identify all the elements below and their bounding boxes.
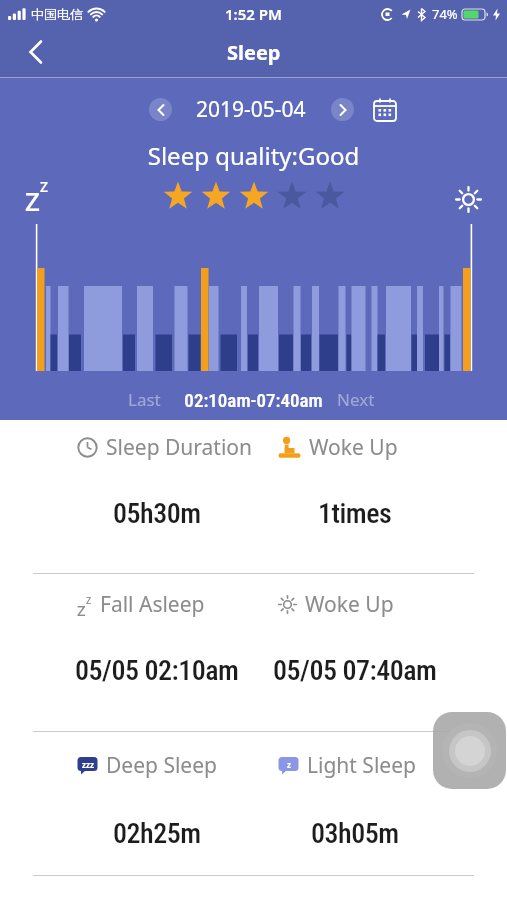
staticText: 03h05m <box>311 817 399 850</box>
staticText: 1times <box>318 497 392 530</box>
staticText: 02:10am-07:40am <box>0 389 507 411</box>
button[interactable] <box>149 98 172 121</box>
staticText: Z <box>25 183 40 218</box>
staticText: Fall Asleep <box>100 590 205 619</box>
staticText: 02h25m <box>113 817 201 850</box>
staticText: Sleep Duration <box>106 433 253 462</box>
staticText: Sleep quality:Good <box>0 139 507 172</box>
staticText: 中国电信 <box>31 6 83 22</box>
staticText: zzz <box>82 759 94 770</box>
staticText: Woke Up <box>305 590 394 619</box>
staticText: Woke Up <box>309 433 398 462</box>
staticText: 05/05 07:40am <box>273 654 437 687</box>
staticText: Deep Sleep <box>106 751 217 780</box>
staticText: Light Sleep <box>307 751 416 780</box>
staticText: Last <box>128 388 161 411</box>
staticText: 05/05 02:10am <box>75 654 239 687</box>
staticText: Z <box>77 600 86 620</box>
staticText: Z <box>40 177 49 196</box>
button[interactable] <box>18 34 54 70</box>
button[interactable] <box>372 97 398 123</box>
staticText: 05h30m <box>113 497 201 530</box>
staticText: Next <box>337 388 375 411</box>
button[interactable] <box>433 712 506 789</box>
staticText: 2019-05-04 <box>196 95 306 124</box>
staticText: 1:52 PM <box>225 4 282 24</box>
button[interactable] <box>331 98 354 121</box>
staticText: z <box>287 759 291 770</box>
staticText: Z <box>86 594 92 606</box>
staticText: Sleep <box>227 39 281 66</box>
staticText: 74% <box>432 5 458 23</box>
